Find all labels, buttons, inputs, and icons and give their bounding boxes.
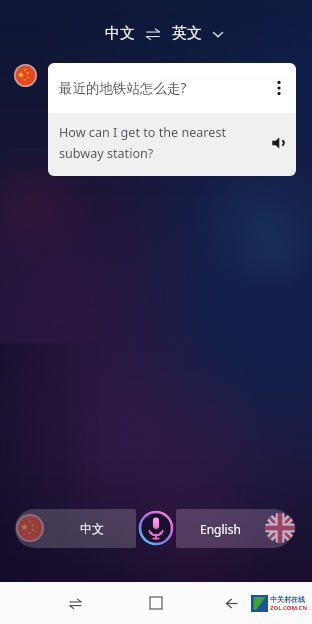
staticText: How can I get to the nearest subway stat…	[59, 124, 226, 162]
button[interactable]: More options	[266, 75, 292, 101]
staticText: 中关村在线	[270, 595, 305, 604]
button[interactable]: Back	[220, 592, 242, 614]
button[interactable]: Play audio	[266, 130, 292, 156]
button[interactable]: 中文	[15, 509, 136, 548]
staticText: 中文	[80, 521, 104, 536]
button[interactable]: Home	[145, 592, 167, 614]
staticText: 最近的地铁站怎么走?	[59, 79, 187, 97]
button[interactable]: Microphone	[133, 508, 179, 548]
staticText: 英文	[172, 24, 202, 43]
button[interactable]: Switch	[64, 592, 86, 614]
staticText: 中文	[105, 24, 135, 43]
button[interactable]: 中文	[99, 21, 230, 46]
staticText: English	[200, 521, 241, 537]
button[interactable]: English	[176, 509, 293, 548]
staticText: ZOL.COM.CN	[270, 604, 308, 612]
